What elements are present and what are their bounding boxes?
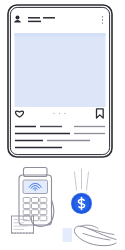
button[interactable]: Contactless payment illustration xyxy=(0,0,125,250)
